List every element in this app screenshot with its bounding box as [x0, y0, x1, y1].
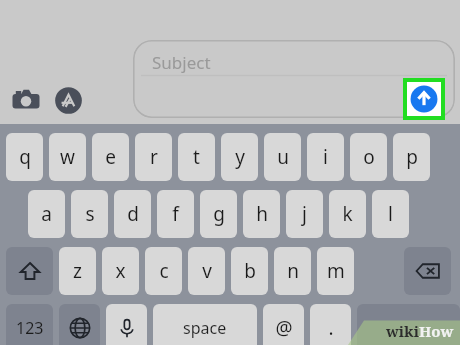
staticText: i — [323, 144, 328, 170]
button[interactable]: Send — [407, 82, 441, 116]
staticText: g — [213, 201, 225, 227]
staticText: d — [127, 201, 139, 227]
staticText: h — [256, 201, 268, 227]
staticText: m — [327, 258, 345, 284]
button[interactable]: Backspace — [404, 247, 451, 295]
button[interactable]: s — [71, 190, 108, 238]
staticText: f — [172, 201, 179, 227]
button[interactable]: 123 — [6, 304, 53, 345]
button[interactable]: . — [310, 304, 351, 345]
staticText: Subject — [152, 51, 211, 74]
button[interactable]: @ — [263, 304, 304, 345]
button[interactable]: g — [200, 190, 237, 238]
staticText: u — [277, 144, 289, 170]
staticText: b — [244, 258, 256, 284]
button[interactable]: f — [157, 190, 194, 238]
button[interactable]: r — [135, 133, 172, 181]
button[interactable]: o — [350, 133, 387, 181]
button[interactable]: space — [153, 304, 257, 345]
button[interactable]: c — [145, 247, 182, 295]
button[interactable]: d — [114, 190, 151, 238]
staticText: q — [19, 144, 31, 170]
staticText: wiki — [386, 321, 419, 341]
staticText: r — [150, 144, 158, 170]
button[interactable]: Return — [357, 304, 460, 345]
staticText: o — [363, 144, 375, 170]
button[interactable]: j — [286, 190, 323, 238]
staticText: j — [302, 201, 307, 227]
staticText: a — [41, 201, 52, 227]
staticText: @ — [275, 315, 293, 341]
staticText: y — [235, 144, 245, 170]
staticText: s — [85, 201, 95, 227]
staticText: c — [159, 258, 169, 284]
button[interactable]: App Store — [50, 82, 86, 118]
button[interactable]: Camera — [8, 82, 44, 118]
button[interactable]: Switch keyboard — [59, 304, 100, 345]
button[interactable]: q — [6, 133, 43, 181]
staticText: How — [419, 321, 454, 341]
staticText: v — [202, 258, 212, 284]
staticText: . — [328, 315, 334, 341]
staticText: 123 — [16, 317, 44, 339]
button[interactable]: n — [274, 247, 311, 295]
button[interactable]: Subject — [133, 40, 455, 118]
staticText: p — [406, 144, 418, 170]
button[interactable]: b — [231, 247, 268, 295]
staticText: k — [342, 201, 353, 227]
button[interactable]: Shift — [6, 247, 53, 295]
staticText: n — [287, 258, 299, 284]
staticText: w — [60, 144, 75, 170]
button[interactable]: v — [188, 247, 225, 295]
button[interactable]: e — [92, 133, 129, 181]
button[interactable]: k — [329, 190, 366, 238]
staticText: t — [193, 144, 200, 170]
button[interactable]: u — [264, 133, 301, 181]
button[interactable]: z — [59, 247, 96, 295]
staticText: e — [105, 144, 116, 170]
staticText: z — [73, 258, 82, 284]
button[interactable]: y — [221, 133, 258, 181]
button[interactable]: a — [28, 190, 65, 238]
button[interactable]: w — [49, 133, 86, 181]
button[interactable]: h — [243, 190, 280, 238]
button[interactable]: x — [102, 247, 139, 295]
staticText: x — [115, 258, 126, 284]
staticText: l — [388, 201, 393, 227]
button[interactable]: i — [307, 133, 344, 181]
staticText: space — [183, 317, 227, 339]
button[interactable]: m — [317, 247, 354, 295]
button[interactable]: t — [178, 133, 215, 181]
button[interactable]: Dictate — [106, 304, 147, 345]
button[interactable]: l — [372, 190, 409, 238]
button[interactable]: p — [393, 133, 430, 181]
